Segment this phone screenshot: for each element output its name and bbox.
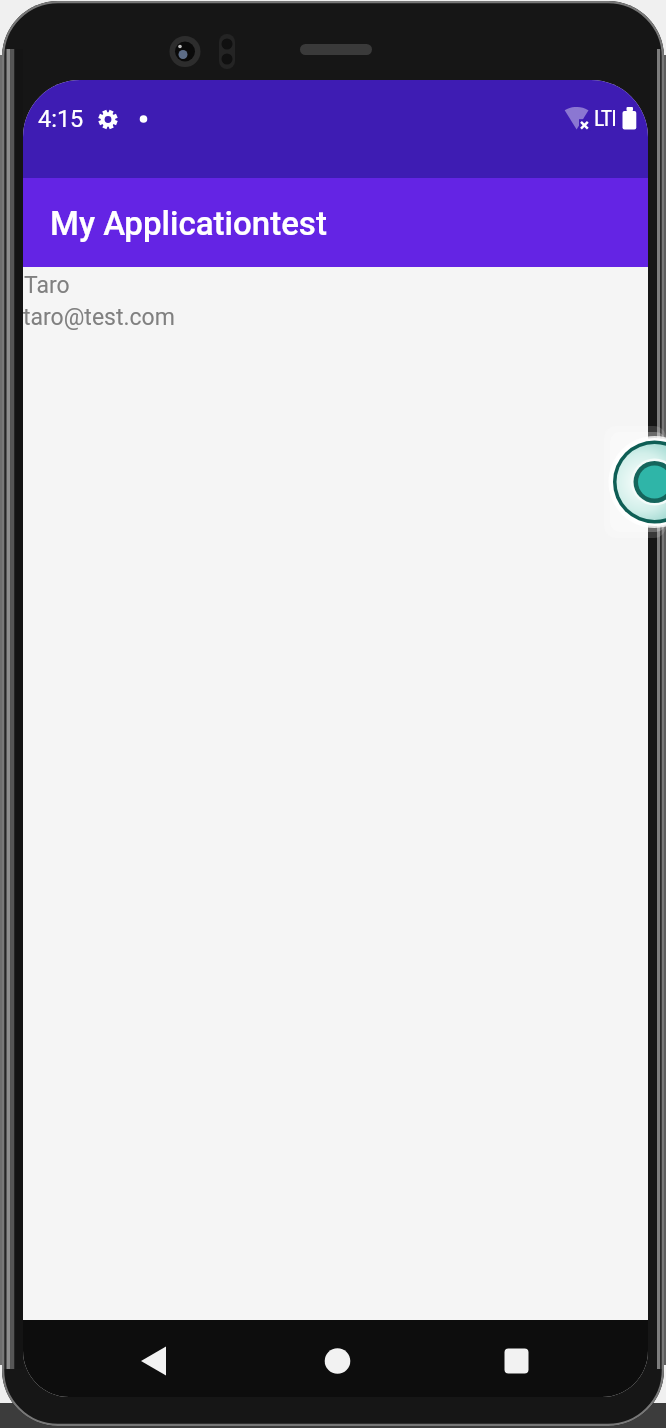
button[interactable]: Taro [23, 267, 648, 331]
staticText: My Applicationtest [50, 204, 327, 243]
button[interactable] [608, 436, 666, 528]
staticText: LTI [594, 106, 617, 132]
staticText: 4:15 [38, 105, 84, 133]
staticText: Taro [24, 272, 70, 299]
button[interactable] [118, 1326, 188, 1392]
staticText: taro@test.com [23, 304, 175, 331]
button[interactable] [481, 1326, 551, 1392]
button[interactable] [303, 1326, 373, 1392]
